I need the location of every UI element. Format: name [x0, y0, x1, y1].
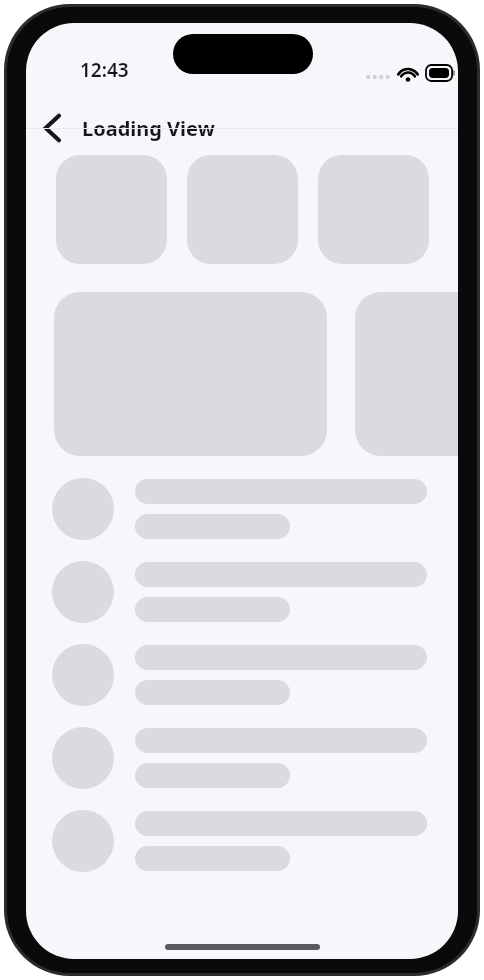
button[interactable]: Loading list item — [26, 727, 458, 789]
button[interactable]: Loading item — [318, 155, 429, 264]
button[interactable]: Loading card — [54, 292, 327, 456]
button[interactable]: Loading item — [187, 155, 298, 264]
staticText: 12:43 — [80, 57, 129, 83]
button[interactable]: Loading list item — [26, 561, 458, 623]
button[interactable]: Loading card — [355, 292, 458, 456]
button[interactable]: Back — [28, 104, 76, 152]
button[interactable]: Loading item — [56, 155, 167, 264]
button[interactable]: Loading list item — [26, 810, 458, 872]
button[interactable]: Loading list item — [26, 644, 458, 706]
button[interactable]: Loading list item — [26, 478, 458, 540]
staticText: Loading View — [82, 115, 215, 142]
